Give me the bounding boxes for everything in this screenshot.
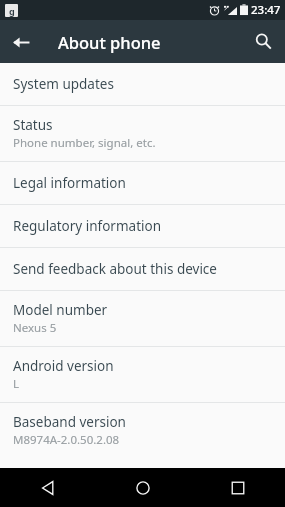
staticText: Status: [13, 116, 53, 134]
button[interactable]: Back: [0, 468, 95, 507]
staticText: Phone number, signal, etc.: [13, 135, 156, 151]
staticText: Baseband version: [13, 413, 126, 431]
button[interactable]: System updates: [0, 63, 285, 105]
button[interactable]: Legal information: [0, 162, 285, 204]
staticText: Send feedback about this device: [13, 260, 217, 278]
button[interactable]: Recent apps: [190, 468, 285, 507]
button[interactable]: Android version: [0, 347, 285, 402]
staticText: L: [13, 376, 20, 392]
staticText: Android version: [13, 357, 114, 375]
staticText: Nexus 5: [13, 320, 57, 336]
button[interactable]: Baseband version: [0, 403, 285, 458]
staticText: Regulatory information: [13, 217, 162, 235]
button[interactable]: Model number: [0, 291, 285, 346]
button[interactable]: Status: [0, 106, 285, 161]
staticText: System updates: [13, 75, 114, 93]
button[interactable]: Home: [95, 468, 190, 507]
staticText: Model number: [13, 301, 108, 319]
staticText: M8974A-2.0.50.2.08: [13, 432, 120, 448]
staticText: About phone: [58, 31, 161, 53]
button[interactable]: Regulatory information: [0, 205, 285, 247]
staticText: Legal information: [13, 174, 126, 192]
button[interactable]: Search: [241, 20, 285, 63]
button[interactable]: Navigate up: [0, 21, 42, 63]
staticText: g: [9, 5, 15, 17]
button[interactable]: Send feedback about this device: [0, 248, 285, 290]
staticText: 23:47: [251, 2, 281, 18]
